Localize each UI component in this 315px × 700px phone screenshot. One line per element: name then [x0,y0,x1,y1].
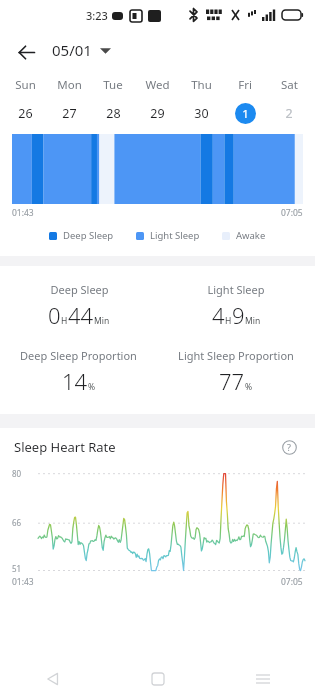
button[interactable]: Home [105,658,210,700]
staticText: Deep Sleep [63,229,114,242]
staticText: Tue [103,77,123,93]
staticText: % [245,381,253,393]
staticText: 77 [219,366,245,396]
button[interactable]: Back [0,658,105,700]
button[interactable]: 1 [223,103,267,124]
staticText: Sleep Heart Rate [14,438,116,456]
staticText: Awake [236,229,266,242]
staticText: Sat [281,77,298,93]
staticText: Mon [57,77,82,93]
button[interactable]: 27 [47,105,91,122]
staticText: 28 [106,105,121,122]
button[interactable]: Help [277,435,301,459]
staticText: 80 [12,468,22,479]
staticText: Min [94,315,110,327]
staticText: Light Sleep Proportion [178,348,294,363]
staticText: Sun [15,77,36,93]
staticText: 05/01 [52,40,92,60]
staticText: Thu [191,77,212,93]
button[interactable]: Back [10,36,42,68]
staticText: Min [245,315,261,327]
staticText: 9 [232,300,245,330]
staticText: 44 [68,300,94,330]
staticText: 01:43 [12,207,34,219]
button[interactable]: 29 [135,105,179,122]
staticText: 30 [194,105,209,122]
staticText: H [61,315,68,327]
staticText: Fri [238,77,252,93]
button[interactable]: Recent apps [210,658,315,700]
staticText: Wed [145,77,170,93]
staticText: 0 [48,300,61,330]
staticText: ? [287,441,291,453]
staticText: 66 [12,517,22,528]
button[interactable]: 30 [179,105,223,122]
staticText: 3:23 [86,8,108,23]
staticText: Deep Sleep Proportion [20,348,137,363]
button[interactable]: 26 [4,105,47,122]
staticText: 14 [62,366,88,396]
staticText: 29 [150,105,165,122]
staticText: 51 [12,563,22,574]
staticText: 1 [242,106,249,122]
staticText: 27 [62,105,77,122]
staticText: 07:05 [281,207,303,219]
staticText: Light Sleep [150,229,200,242]
staticText: Light Sleep [207,282,265,297]
staticText: % [88,381,96,393]
staticText: H [225,315,232,327]
staticText: 07:05 [281,576,303,588]
button[interactable]: 28 [91,105,135,122]
staticText: 26 [18,105,33,122]
button[interactable]: 2 [267,105,311,122]
staticText: 01:43 [12,576,34,588]
staticText: Deep Sleep [50,282,109,297]
staticText: 4 [212,300,225,330]
staticText: 2 [285,105,293,122]
button[interactable]: 05/01 [50,38,113,62]
